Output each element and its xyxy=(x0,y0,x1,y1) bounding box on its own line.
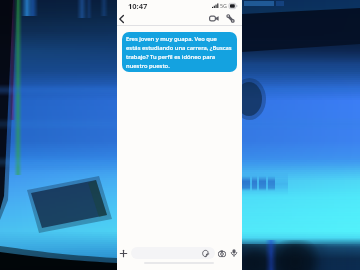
button[interactable]: Add attachment xyxy=(117,246,130,260)
button[interactable]: Stickers xyxy=(199,247,211,259)
staticText: 5G xyxy=(220,2,227,9)
button[interactable]: Video call xyxy=(207,11,221,25)
button[interactable] xyxy=(131,247,215,259)
button[interactable]: Voice message xyxy=(227,246,241,260)
button[interactable]: Call xyxy=(223,11,237,25)
button[interactable]: Camera xyxy=(215,246,229,260)
staticText: Eres joven y muy guapa. Veo que estás es… xyxy=(126,35,232,70)
button[interactable]: Eres joven y muy guapa. Veo que estás es… xyxy=(122,32,237,72)
staticText: 10:47 xyxy=(128,1,148,11)
button[interactable]: Back xyxy=(117,12,128,25)
